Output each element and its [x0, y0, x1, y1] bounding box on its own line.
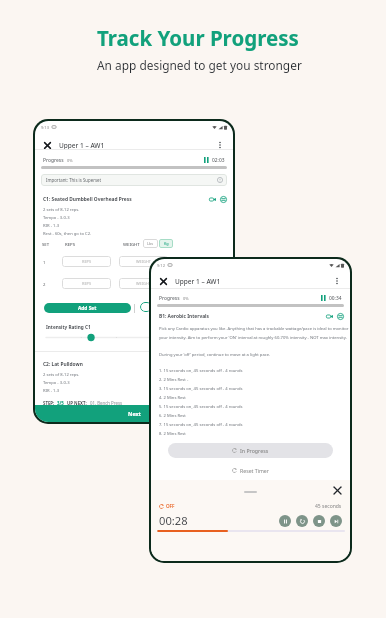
staticText: WEIGHT	[136, 281, 151, 286]
button[interactable]: skip	[330, 515, 342, 527]
staticText: Track Your Progress	[97, 24, 299, 52]
staticText: 3. 15 seconds on, 45 seconds off - 4 rou…	[159, 386, 243, 392]
staticText: UP NEXT:	[67, 400, 87, 406]
staticText: WEIGHT	[136, 259, 151, 264]
button[interactable]: replay	[296, 515, 308, 527]
staticText: REPS	[65, 241, 76, 247]
staticText: An app designed to get you stronger	[97, 57, 302, 73]
staticText: Important: This is Superset	[46, 177, 102, 183]
staticText: 1. 15 seconds on, 45 seconds off - 4 rou…	[159, 368, 243, 374]
staticText: Intensity Rating C1	[46, 324, 91, 330]
staticText: REPS	[82, 259, 92, 264]
staticText: Kg	[164, 241, 169, 246]
button[interactable]: Reset Timer	[151, 465, 350, 475]
button[interactable]: Next	[35, 405, 233, 422]
staticText: 01. Bench Press	[90, 400, 123, 406]
staticText: Add Set	[78, 305, 97, 312]
staticText: 3/5	[57, 400, 64, 406]
staticText: 0%	[67, 158, 73, 163]
button[interactable]: Remove set	[140, 302, 152, 312]
staticText: Progress	[159, 295, 180, 302]
staticText: 4. 2 Mins Rest	[159, 395, 186, 401]
other: Swap exercise	[220, 196, 227, 203]
staticText: STEP:	[43, 400, 55, 406]
staticText: 6. 2 Mins Rest	[159, 413, 186, 419]
staticText: 5. 15 seconds on, 45 seconds off - 4 rou…	[159, 404, 243, 410]
staticText: Pick any Cardio apparatus you like. Anyt…	[159, 326, 349, 332]
staticText: your intensity. Aim to perform your 'ON'…	[159, 335, 347, 341]
staticText: 2. 2 Mins Rest -	[159, 377, 189, 383]
button[interactable]: Close timer	[333, 486, 342, 495]
button[interactable]: REPS	[62, 256, 111, 267]
staticText: 9:13	[41, 125, 49, 130]
staticText: RIR - 1-3	[43, 223, 60, 229]
staticText: Upper 1 – AW1	[59, 141, 105, 150]
staticText: 1	[43, 259, 46, 265]
staticText: In Progress	[240, 447, 269, 454]
button[interactable]: Add Set	[44, 303, 131, 313]
button[interactable]: Kg	[159, 239, 173, 248]
staticText: Lbs	[147, 241, 154, 246]
staticText: 2 sets of 8-12 reps.	[43, 207, 80, 213]
other: More options	[216, 141, 224, 149]
other: Video demo	[326, 313, 333, 320]
button[interactable]: Lbs	[143, 239, 158, 248]
other: Swap exercise	[337, 313, 344, 320]
staticText: During your 'off' period, continue to mo…	[159, 352, 271, 358]
other: Close	[44, 142, 51, 149]
button[interactable]: Important: This is Superset	[41, 174, 227, 186]
button[interactable]: WEIGHT	[119, 256, 168, 267]
button[interactable]: REPS	[62, 278, 111, 289]
staticText: WEIGHT	[123, 241, 140, 247]
staticText: Tempo - 3-0-3	[43, 380, 70, 386]
staticText: REPS	[82, 281, 92, 286]
staticText: 2 sets of 8-12 reps.	[43, 372, 80, 378]
staticText: Reset Timer	[240, 467, 269, 474]
staticText: Next	[128, 410, 141, 417]
staticText: 02:03	[212, 157, 225, 164]
staticText: 9:12	[157, 263, 165, 268]
staticText: 00:28	[159, 513, 188, 528]
staticText: 45 seconds	[315, 503, 342, 509]
staticText: 8. 2 Mins Rest	[159, 431, 186, 437]
staticText: 7. 15 seconds on, 45 seconds off - 4 rou…	[159, 422, 243, 428]
button[interactable]: Intensity slider	[46, 333, 222, 342]
staticText: C2: Lat Pulldown	[43, 361, 83, 368]
staticText: Tempo - 3-0-3	[43, 215, 70, 221]
staticText: 00:34	[329, 295, 342, 302]
staticText: Progress	[43, 157, 64, 164]
button[interactable]: In Progress	[168, 443, 333, 458]
button[interactable]: stop	[313, 515, 325, 527]
staticText: SET	[42, 241, 50, 247]
staticText: 2	[43, 281, 46, 287]
staticText: Upper 1 – AW1	[175, 277, 221, 286]
button[interactable]: Close	[44, 134, 224, 156]
button[interactable]: pause	[279, 515, 291, 527]
other: Video demo	[209, 196, 216, 203]
staticText: B1: Aerobic Intervals	[159, 313, 209, 320]
staticText: C1: Seated Dumbbell Overhead Press	[43, 196, 132, 203]
staticText: Rest - 60s, then go to C2.	[43, 231, 92, 237]
button[interactable]: Close	[160, 270, 341, 292]
other: Pause workout	[321, 295, 326, 301]
other: Pause workout	[204, 157, 209, 163]
other: Close	[160, 278, 167, 285]
button[interactable]: WEIGHT	[119, 278, 168, 289]
staticText: 0%	[183, 296, 189, 301]
other: More options	[333, 277, 341, 285]
staticText: RIR - 1-3	[43, 388, 60, 394]
staticText: OFF	[166, 503, 175, 509]
